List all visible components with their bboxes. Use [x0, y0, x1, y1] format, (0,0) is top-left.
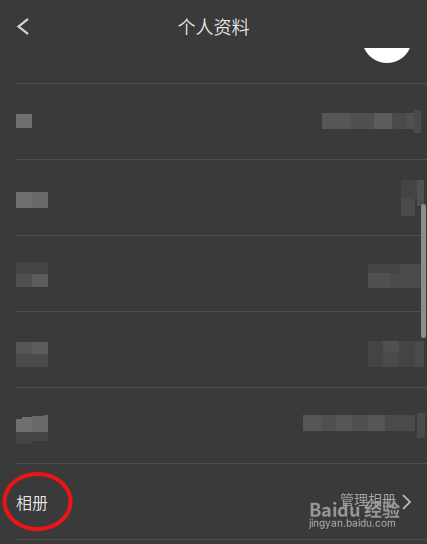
button[interactable] — [0, 160, 427, 236]
button[interactable]: Back — [0, 0, 46, 46]
staticText: 管理相册 — [340, 489, 396, 509]
staticText: 相册 — [16, 490, 48, 514]
button[interactable]: 相册 — [0, 464, 427, 540]
button[interactable] — [0, 312, 427, 388]
button[interactable] — [0, 236, 427, 312]
staticText: jingyan.baidu.com — [309, 517, 396, 529]
button[interactable] — [0, 84, 427, 160]
staticText: Baidu 经验 — [309, 496, 400, 522]
staticText: 个人资料 — [177, 13, 249, 39]
button[interactable] — [0, 388, 427, 464]
